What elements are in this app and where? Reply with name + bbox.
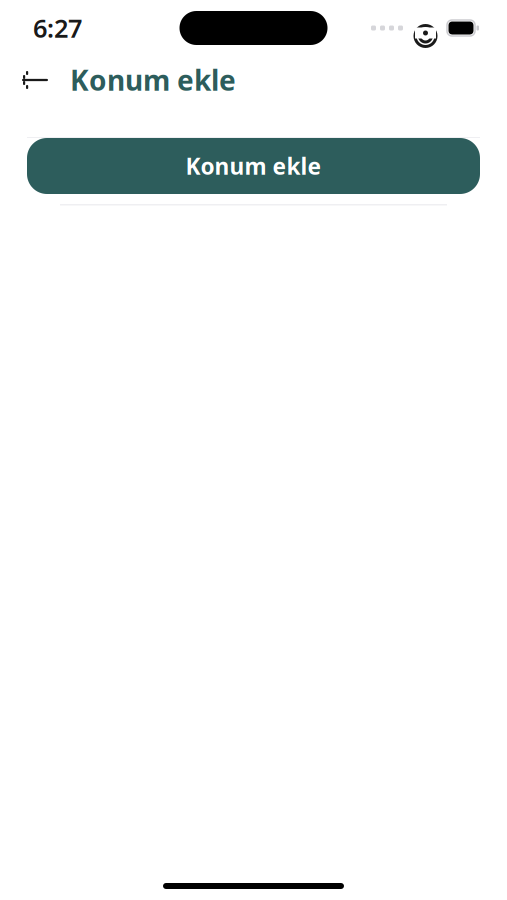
button[interactable]: Konum ekle	[27, 138, 480, 194]
staticText: Konum ekle	[185, 151, 321, 181]
button[interactable]: Back	[8, 57, 62, 103]
staticText: 6:27	[33, 11, 82, 45]
staticText: Konum ekle	[70, 61, 236, 99]
